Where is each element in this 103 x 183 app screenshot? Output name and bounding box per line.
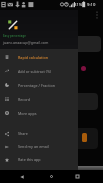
button[interactable]: Rapid calculation — [0, 50, 78, 64]
staticText: Add or subtract (%) — [18, 69, 52, 74]
button[interactable]: Add or subtract (%) — [0, 64, 78, 78]
staticText: Share — [18, 131, 28, 136]
button[interactable]: Rate this app — [0, 153, 78, 166]
staticText: Easy percentage — [3, 34, 26, 38]
button[interactable]: Recents — [71, 170, 84, 183]
staticText: Percentage / Fraction — [18, 83, 55, 88]
button[interactable]: Send my an email — [0, 140, 78, 153]
staticText: Record — [18, 97, 31, 102]
staticText: More apps — [18, 111, 37, 116]
staticText: juanc.anaacup@gmail.com — [3, 40, 49, 45]
button[interactable]: Record — [0, 92, 78, 106]
button[interactable]: Back — [15, 170, 28, 183]
button[interactable]: Share — [0, 127, 78, 140]
staticText: 9:10 — [87, 2, 96, 8]
button[interactable]: Percentage / Fraction — [0, 78, 78, 92]
staticText: Send my an email — [18, 144, 49, 149]
button[interactable]: More apps — [0, 106, 78, 120]
staticText: Rate this app — [18, 157, 41, 162]
staticText: 81% — [74, 2, 83, 8]
staticText: Rapid calculation — [18, 55, 49, 60]
button[interactable]: Home — [45, 170, 58, 183]
